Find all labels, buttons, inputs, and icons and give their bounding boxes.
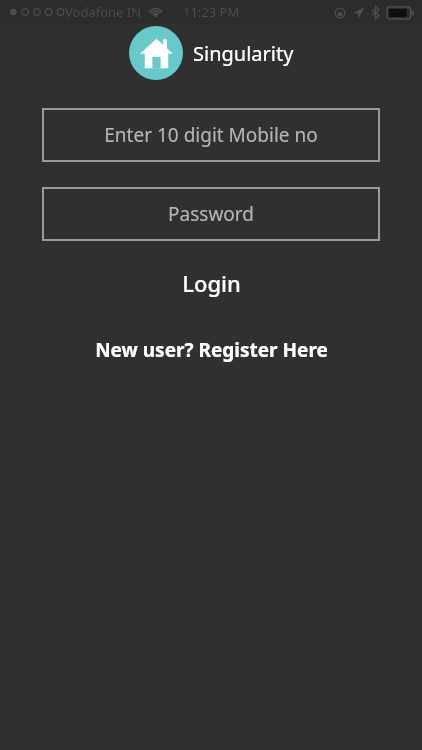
staticText: Vodafone IN (65, 3, 142, 21)
staticText: Singularity (193, 40, 294, 67)
staticText: Password (168, 201, 254, 227)
staticText: Login (182, 268, 241, 298)
button[interactable]: Login (0, 263, 422, 303)
button[interactable]: Enter 10 digit Mobile no (42, 108, 380, 162)
button[interactable]: Password (42, 187, 380, 241)
staticText: Enter 10 digit Mobile no (104, 122, 318, 148)
staticText: 11:23 PM (183, 3, 240, 21)
staticText: New user? Register Here (95, 337, 328, 363)
button[interactable]: New user? Register Here (0, 332, 422, 368)
other: Singularity home logo (129, 26, 183, 80)
